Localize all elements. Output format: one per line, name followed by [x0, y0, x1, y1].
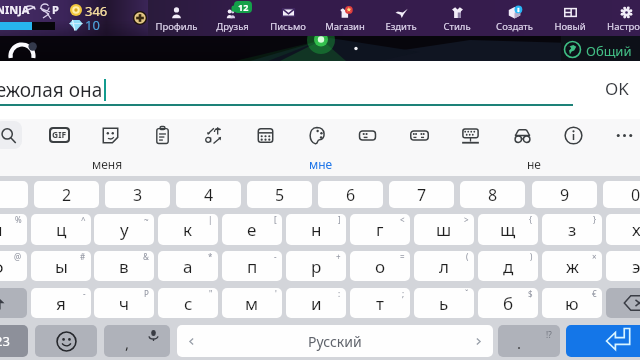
button[interactable]: One handed mode — [351, 119, 383, 151]
button[interactable]: э — [606, 251, 640, 281]
button[interactable]: 7 — [389, 181, 454, 208]
staticText: | — [208, 214, 213, 225]
button[interactable]: я — [31, 288, 91, 318]
button[interactable]: Настрой — [598, 0, 640, 36]
button[interactable]: Translate — [197, 119, 229, 151]
button[interactable]: м — [222, 288, 282, 318]
button[interactable]: щ — [478, 214, 538, 245]
button[interactable]: Ездить — [373, 0, 429, 36]
staticText: ; — [402, 288, 405, 299]
button[interactable]: Новый — [542, 0, 598, 36]
staticText: с — [184, 292, 193, 315]
button[interactable]: 12 — [204, 0, 260, 36]
button[interactable]: 2 — [34, 181, 99, 208]
button[interactable]: н — [286, 214, 346, 245]
button[interactable]: Backspace — [606, 288, 640, 318]
button[interactable]: в — [94, 251, 154, 281]
staticText: - — [83, 288, 86, 299]
button[interactable]: Письмо — [260, 0, 316, 36]
staticText: [ — [274, 214, 277, 225]
button[interactable]: 6 — [318, 181, 383, 208]
staticText: . — [517, 333, 522, 353]
staticText: ж — [566, 255, 579, 278]
staticText: х — [632, 218, 640, 241]
button[interactable]: Clipboard — [146, 119, 178, 151]
staticText: а — [183, 255, 193, 278]
button[interactable]: т — [350, 288, 410, 318]
button[interactable]: . — [498, 325, 560, 357]
staticText: > — [464, 214, 469, 225]
staticText: Профиль — [155, 20, 198, 33]
button[interactable]: 4 — [176, 181, 241, 208]
button[interactable]: ?123 — [0, 325, 28, 357]
button[interactable]: Stickers — [94, 119, 126, 151]
button[interactable]: 1 — [0, 181, 28, 208]
button[interactable]: OK — [598, 74, 636, 102]
button[interactable]: б — [478, 288, 538, 318]
staticText: 4 — [204, 184, 214, 206]
button[interactable]: у — [94, 214, 154, 245]
button[interactable]: Search — [0, 119, 24, 151]
staticText: OK — [605, 77, 629, 100]
button[interactable]: с — [158, 288, 218, 318]
button[interactable]: Theme — [300, 119, 332, 151]
button[interactable]: , — [104, 325, 170, 357]
button[interactable]: л — [414, 251, 474, 281]
button[interactable]: GIF — [43, 119, 75, 151]
button[interactable]: Магазин — [317, 0, 373, 36]
button[interactable]: и — [286, 288, 346, 318]
button[interactable]: з — [542, 214, 602, 245]
button[interactable]: п — [222, 251, 282, 281]
button[interactable]: ю — [542, 288, 602, 318]
staticText: не — [527, 156, 541, 172]
button[interactable]: Incognito mode — [506, 119, 538, 151]
button[interactable]: а — [158, 251, 218, 281]
button[interactable]: Floating keyboard — [454, 119, 486, 151]
button[interactable]: Emoji — [35, 325, 97, 357]
button[interactable]: не — [427, 153, 640, 175]
staticText: 6 — [346, 184, 356, 206]
button[interactable]: р — [286, 251, 346, 281]
button[interactable]: Shift — [0, 288, 27, 318]
button[interactable]: Стиль — [429, 0, 485, 36]
button[interactable]: ш — [414, 214, 474, 245]
button[interactable]: 8 — [460, 181, 525, 208]
button[interactable]: ж — [542, 251, 602, 281]
staticText: мне — [309, 156, 333, 172]
button[interactable]: х — [606, 214, 640, 245]
button[interactable]: Русский — [177, 325, 493, 357]
button[interactable]: ы — [31, 251, 91, 281]
button[interactable]: Профиль — [148, 0, 204, 36]
button[interactable]: о — [350, 251, 410, 281]
staticText: Письмо — [270, 20, 306, 33]
staticText: ( — [466, 251, 469, 262]
button[interactable]: Calendar — [249, 119, 281, 151]
button[interactable]: к — [158, 214, 218, 245]
staticText: Настрой — [607, 20, 640, 33]
staticText: 346 — [85, 2, 108, 20]
button[interactable]: ч — [94, 288, 154, 318]
button[interactable]: Info — [557, 119, 589, 151]
button[interactable]: 0 — [603, 181, 640, 208]
button[interactable]: 5 — [247, 181, 312, 208]
staticText: < — [400, 214, 405, 225]
button[interactable]: д — [478, 251, 538, 281]
button[interactable]: г — [350, 214, 410, 245]
button[interactable]: е — [222, 214, 282, 245]
button[interactable]: Split keyboard — [403, 119, 435, 151]
button[interactable]: Создать — [486, 0, 542, 36]
button[interactable]: меня — [0, 153, 214, 175]
button[interactable]: ц — [31, 214, 91, 245]
button[interactable]: ф — [0, 251, 27, 281]
button[interactable]: Enter — [566, 325, 640, 357]
button[interactable]: 3 — [105, 181, 170, 208]
button[interactable]: мне — [214, 153, 427, 175]
staticText: Ездить — [385, 20, 417, 33]
staticText: Русский — [308, 332, 362, 351]
button[interactable]: More options — [608, 119, 640, 151]
button[interactable]: й — [0, 214, 27, 245]
button[interactable]: ь — [414, 288, 474, 318]
staticText: 12 — [238, 1, 249, 13]
staticText: GIF — [52, 129, 67, 141]
button[interactable]: 9 — [532, 181, 597, 208]
